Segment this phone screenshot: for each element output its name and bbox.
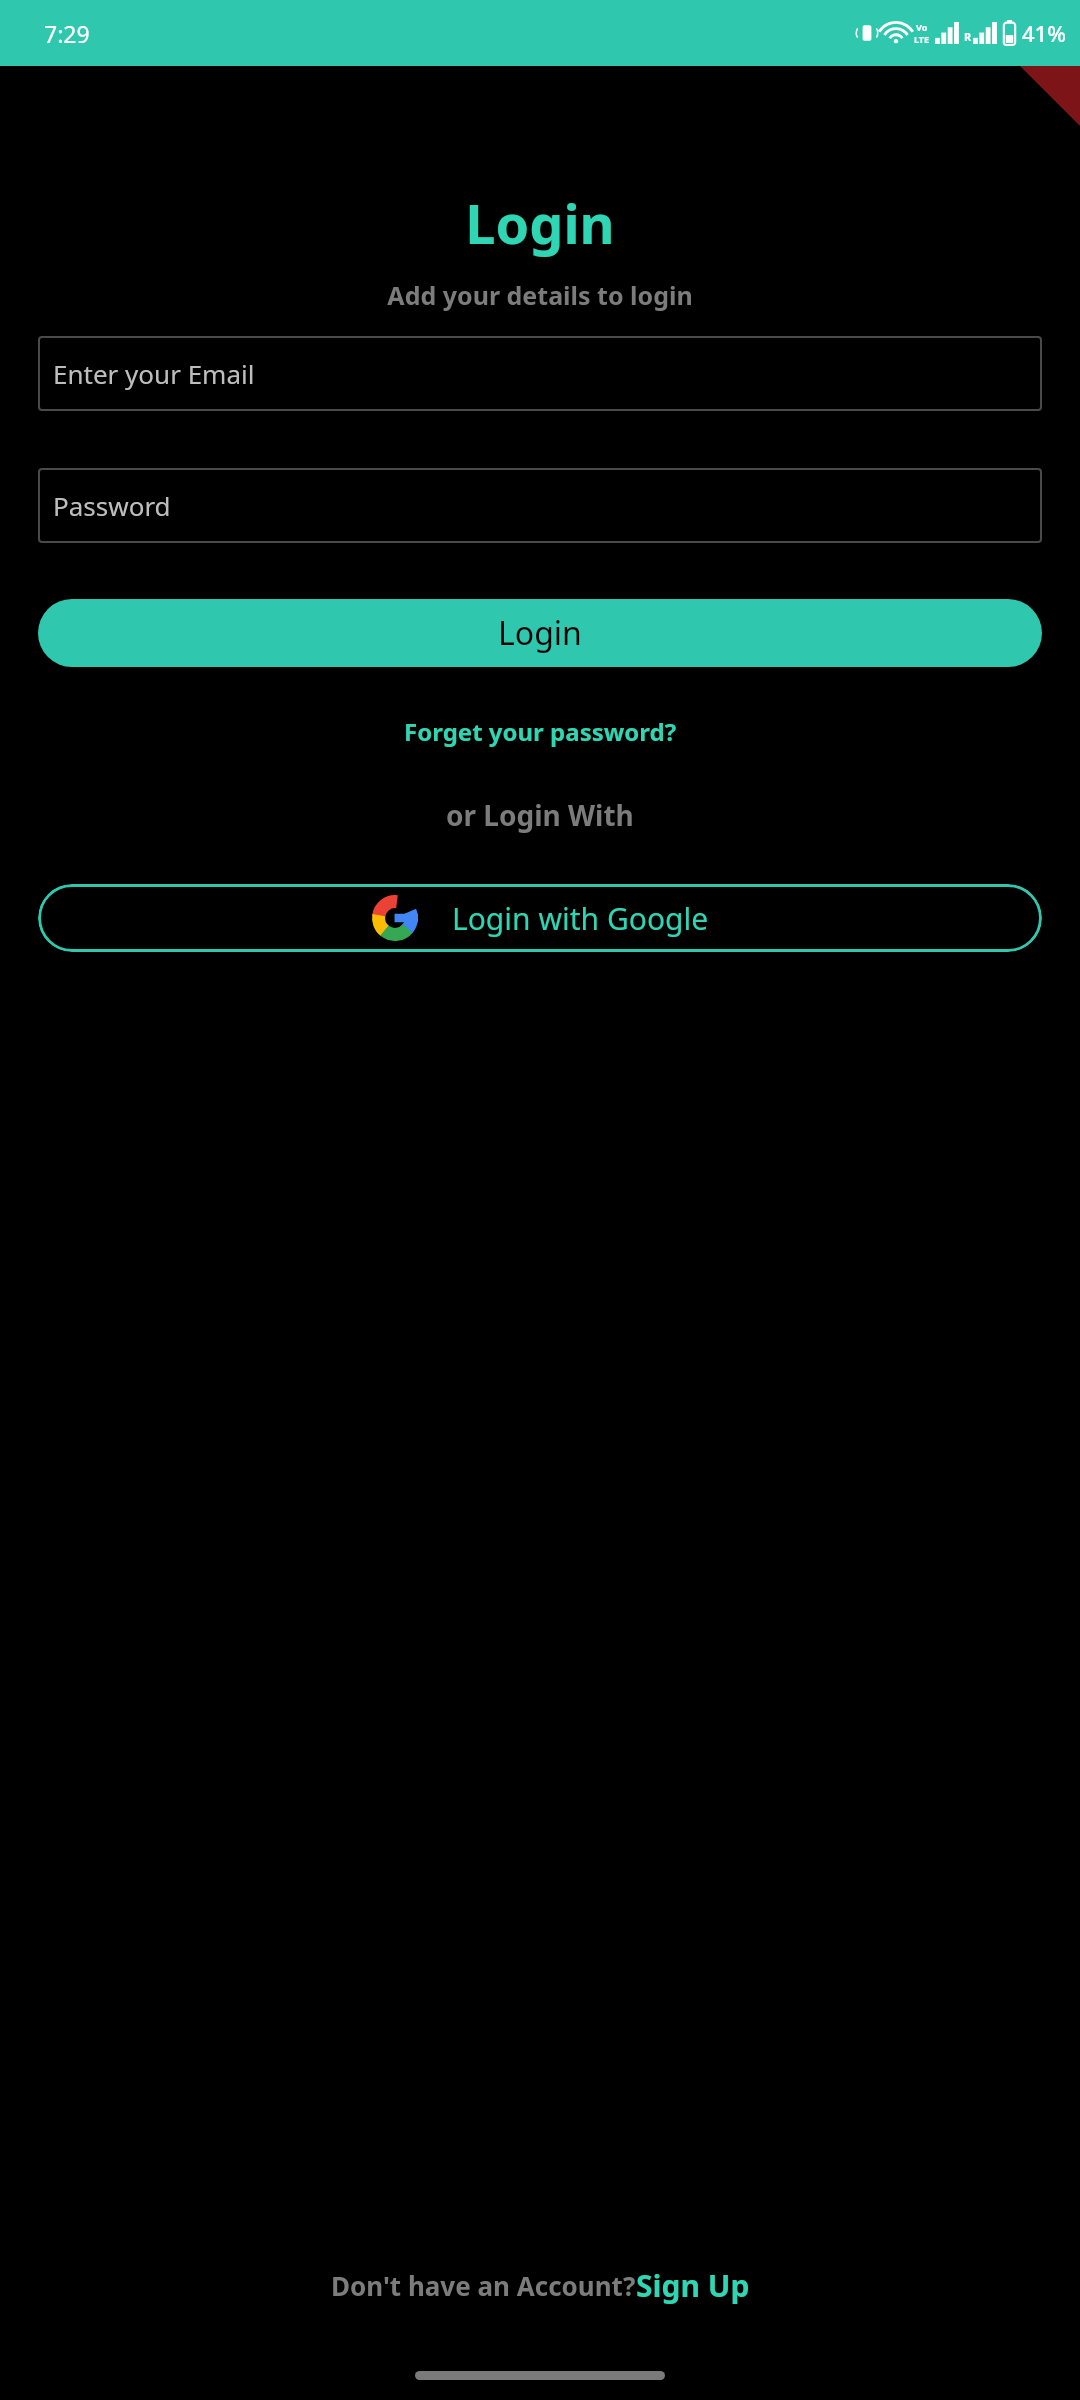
button[interactable]: Sign Up xyxy=(636,2265,750,2306)
staticText: 41% xyxy=(1022,18,1066,48)
staticText: Login xyxy=(465,186,615,260)
other: Google xyxy=(372,895,418,941)
staticText: LTE xyxy=(914,33,930,45)
staticText: Password xyxy=(53,488,171,523)
staticText: Don't have an Account? xyxy=(331,2268,636,2303)
staticText: 7:29 xyxy=(44,18,90,49)
staticText: R xyxy=(964,29,972,44)
staticText: Sign Up xyxy=(636,2265,750,2306)
staticText: Add your details to login xyxy=(387,278,693,312)
staticText: Forget your password? xyxy=(404,715,677,748)
staticText: Login xyxy=(498,611,582,655)
staticText: Vo xyxy=(916,21,928,33)
button[interactable]: Enter your Email xyxy=(38,336,1042,411)
button[interactable]: Password xyxy=(38,468,1042,543)
staticText: Login with Google xyxy=(452,898,709,939)
button[interactable]: Login xyxy=(38,599,1042,667)
button[interactable]: Google xyxy=(38,884,1042,952)
button[interactable]: Forget your password? xyxy=(394,711,687,752)
staticText: or Login With xyxy=(446,796,634,834)
staticText: Enter your Email xyxy=(53,356,255,391)
